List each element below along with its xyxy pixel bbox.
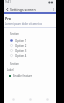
staticText: Option 4 [15,54,27,58]
staticText: Enable feature [13,74,33,78]
button[interactable]: Option 4 [4,53,56,58]
button[interactable]: Back [4,6,10,12]
staticText: 9:41 [5,0,11,4]
staticText: Section [10,32,19,36]
button[interactable]: Option 2 [4,43,56,48]
staticText: Option 1 [15,39,27,43]
staticText: Section [10,62,19,66]
staticText: Settings screen [10,7,36,12]
button[interactable]: More options [50,6,56,12]
staticText: Pro [5,16,12,21]
button[interactable]: Option 1 [4,38,56,43]
button[interactable]: Option 3 [4,48,56,53]
staticText: Label [7,68,14,72]
staticText: Lorem ipsum dolor sit amet co [5,22,43,26]
button[interactable]: Recents [39,95,56,103]
button[interactable]: Enable feature [4,74,56,78]
staticText: Option 3 [15,49,27,53]
button[interactable]: Back [4,95,22,103]
button[interactable]: Home [22,95,39,103]
staticText: Option 2 [15,44,27,48]
